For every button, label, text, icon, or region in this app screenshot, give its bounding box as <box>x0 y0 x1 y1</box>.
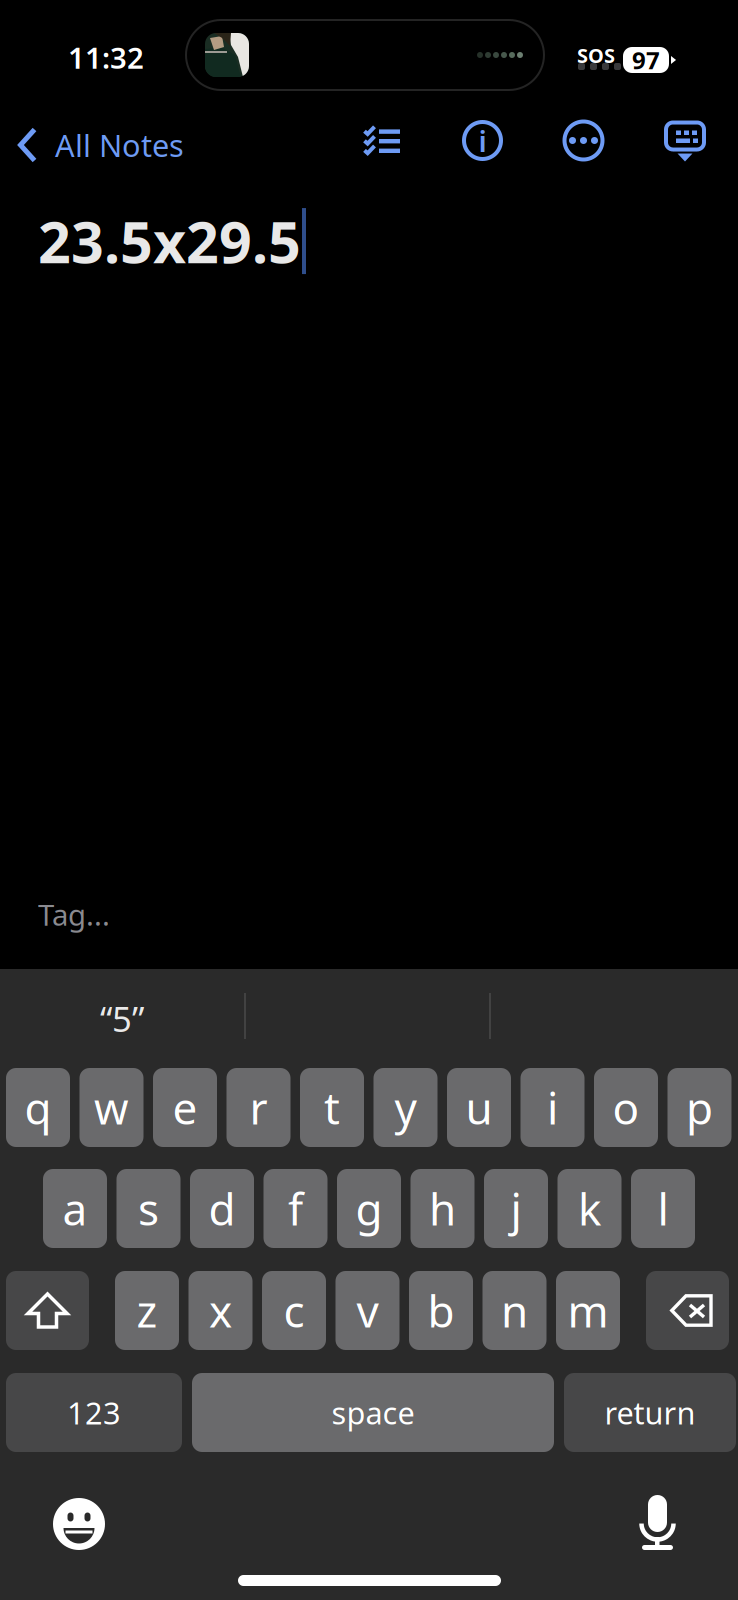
staticText: 11:32 <box>68 38 144 77</box>
staticText: “5” <box>100 995 144 1041</box>
button[interactable]: w <box>79 1068 143 1147</box>
staticText: m <box>567 1281 608 1340</box>
staticText: p <box>686 1078 713 1137</box>
button[interactable]: u <box>447 1068 511 1147</box>
staticText: q <box>24 1078 51 1137</box>
staticText: d <box>208 1179 235 1238</box>
staticText: r <box>249 1078 267 1137</box>
staticText: space <box>331 1392 414 1433</box>
staticText: v <box>356 1281 378 1340</box>
staticText: u <box>465 1078 492 1137</box>
button[interactable]: Shift <box>6 1271 89 1350</box>
button[interactable]: t <box>300 1068 364 1147</box>
button[interactable]: q <box>6 1068 70 1147</box>
button[interactable]: Emoji <box>53 1498 105 1550</box>
staticText: i <box>478 121 486 160</box>
staticText: n <box>501 1281 528 1340</box>
staticText: 23.5x29.5 <box>38 203 301 279</box>
button[interactable]: All Notes <box>0 114 220 176</box>
staticText: w <box>94 1078 129 1137</box>
button[interactable]: o <box>594 1068 658 1147</box>
staticText: All Notes <box>55 125 184 165</box>
button[interactable]: f <box>263 1169 327 1248</box>
button[interactable]: k <box>557 1169 621 1248</box>
staticText: x <box>209 1281 232 1340</box>
staticText: f <box>288 1179 303 1238</box>
staticText: g <box>355 1179 382 1238</box>
staticText: j <box>510 1179 521 1238</box>
button[interactable]: b <box>409 1271 473 1350</box>
button[interactable]: m <box>556 1271 620 1350</box>
button[interactable]: space <box>192 1373 554 1452</box>
button[interactable]: n <box>482 1271 546 1350</box>
button[interactable]: “5” <box>0 969 244 1068</box>
button[interactable]: Dictate <box>639 1495 676 1550</box>
button[interactable]: c <box>262 1271 326 1350</box>
staticText: a <box>62 1179 87 1238</box>
button[interactable]: e <box>153 1068 217 1147</box>
staticText: l <box>657 1179 668 1238</box>
button[interactable]: x <box>188 1271 252 1350</box>
button[interactable]: g <box>337 1169 401 1248</box>
staticText: i <box>547 1078 558 1137</box>
button[interactable]: z <box>115 1271 179 1350</box>
button[interactable]: r <box>226 1068 290 1147</box>
staticText: z <box>136 1281 157 1340</box>
staticText: o <box>612 1078 639 1137</box>
staticText: t <box>324 1078 340 1137</box>
staticText: s <box>138 1179 159 1238</box>
staticText: y <box>394 1078 416 1137</box>
button[interactable]: a <box>43 1169 107 1248</box>
staticText: e <box>172 1078 197 1137</box>
staticText: h <box>429 1179 456 1238</box>
staticText: b <box>427 1281 454 1340</box>
button[interactable]: 123 <box>6 1373 182 1452</box>
staticText: c <box>283 1281 304 1340</box>
button[interactable]: return <box>564 1373 736 1452</box>
staticText: Tag... <box>38 895 110 934</box>
button[interactable]: d <box>190 1169 254 1248</box>
button[interactable]: More <box>557 114 610 167</box>
button[interactable]: Dismiss Keyboard <box>658 114 712 169</box>
staticText: 97 <box>632 44 660 76</box>
button[interactable]: l <box>631 1169 695 1248</box>
button[interactable]: i <box>520 1068 584 1147</box>
button[interactable]: p <box>667 1068 731 1147</box>
staticText: k <box>578 1179 601 1238</box>
button[interactable]: h <box>410 1169 474 1248</box>
button[interactable]: y <box>373 1068 437 1147</box>
staticText: 123 <box>67 1392 121 1433</box>
button[interactable]: v <box>335 1271 399 1350</box>
staticText: return <box>604 1392 695 1433</box>
button[interactable]: s <box>116 1169 180 1248</box>
button[interactable]: Info <box>456 114 509 167</box>
staticText: SOS <box>577 42 615 69</box>
button[interactable]: Delete <box>646 1271 729 1350</box>
button[interactable]: Checklist <box>356 118 408 165</box>
button[interactable]: j <box>484 1169 548 1248</box>
